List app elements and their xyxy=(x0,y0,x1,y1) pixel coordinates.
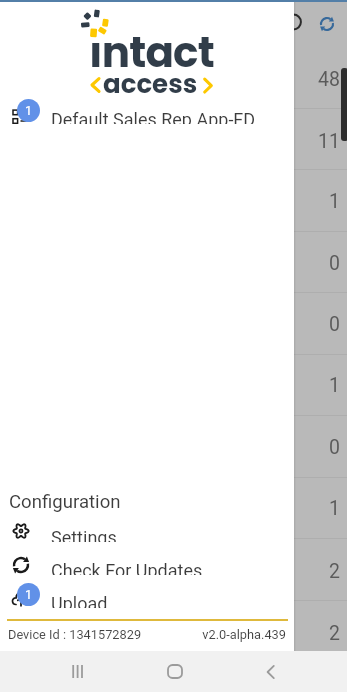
staticText: 11 xyxy=(250,130,340,153)
staticText: 0 xyxy=(250,436,340,459)
button[interactable]: Settings xyxy=(0,509,294,542)
staticText: 1 xyxy=(250,190,340,213)
staticText: 1 xyxy=(250,497,340,520)
button[interactable]: Home xyxy=(154,651,195,692)
staticText: Upload xyxy=(51,593,108,608)
staticText: 0 xyxy=(250,252,340,275)
staticText: v2.0-alpha.439 xyxy=(180,627,286,642)
button[interactable]: Upload xyxy=(0,575,294,608)
staticText: 1 xyxy=(25,103,33,118)
staticText: access xyxy=(103,66,198,102)
staticText: 2 xyxy=(250,560,340,583)
button[interactable]: Recent apps xyxy=(57,651,98,692)
staticText: 1 xyxy=(25,587,33,602)
staticText: Default Sales Rep App-FD xyxy=(51,109,256,124)
staticText: Settings xyxy=(51,527,117,542)
staticText: Check For Updates xyxy=(51,560,203,575)
button[interactable]: Default Sales Rep App-FD xyxy=(0,91,294,124)
staticText: ıntact xyxy=(89,23,214,82)
button[interactable]: Check For Updates xyxy=(0,542,294,575)
staticText: Configuration xyxy=(9,491,121,513)
staticText: 1 xyxy=(250,374,340,397)
staticText: 2 xyxy=(250,622,340,645)
staticText: Device Id : 1341572829 xyxy=(8,627,142,642)
staticText: 0 xyxy=(250,313,340,336)
staticText: 48 xyxy=(250,68,340,91)
button[interactable]: Back xyxy=(250,651,291,692)
